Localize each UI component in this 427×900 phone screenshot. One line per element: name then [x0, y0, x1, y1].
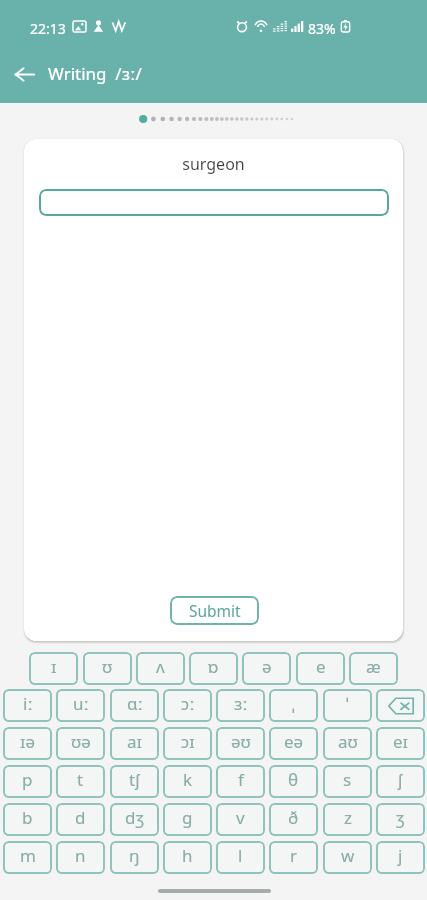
- staticText: w: [341, 844, 355, 867]
- button[interactable]: ə: [242, 652, 291, 685]
- staticText: Submit: [189, 600, 241, 621]
- staticText: ɪə: [20, 730, 36, 753]
- button[interactable]: eɪ: [376, 727, 425, 760]
- button[interactable]: eə: [269, 727, 318, 760]
- staticText: tʃ: [129, 768, 140, 791]
- button[interactable]: g: [163, 803, 212, 836]
- button[interactable]: m: [3, 841, 52, 874]
- button[interactable]: Backspace: [376, 689, 425, 722]
- staticText: θ: [288, 768, 299, 791]
- button[interactable]: e: [296, 652, 345, 685]
- button[interactable]: b: [3, 803, 52, 836]
- staticText: d: [75, 806, 86, 829]
- staticText: Writing /ɜː/: [48, 62, 142, 85]
- staticText: ɪ: [51, 655, 57, 678]
- button[interactable]: [39, 189, 389, 216]
- button[interactable]: ʒ: [376, 803, 425, 836]
- staticText: m: [20, 844, 36, 867]
- button[interactable]: ʌ: [136, 652, 185, 685]
- staticText: aɪ: [127, 730, 142, 753]
- staticText: e: [316, 655, 326, 678]
- button[interactable]: tʃ: [110, 765, 159, 798]
- staticText: æ: [366, 655, 381, 678]
- button[interactable]: ʊə: [56, 727, 105, 760]
- button[interactable]: Submit: [170, 596, 259, 625]
- staticText: k: [183, 768, 193, 791]
- button[interactable]: l: [216, 841, 265, 874]
- staticText: p: [22, 768, 33, 791]
- staticText: ə: [262, 655, 272, 678]
- button[interactable]: f: [216, 765, 265, 798]
- button[interactable]: n: [56, 841, 105, 874]
- button[interactable]: ɑː: [110, 689, 159, 722]
- button[interactable]: w: [323, 841, 372, 874]
- staticText: eɪ: [393, 730, 409, 753]
- staticText: l: [238, 844, 243, 867]
- button[interactable]: v: [216, 803, 265, 836]
- staticText: ɔɪ: [181, 730, 195, 753]
- button[interactable]: h: [163, 841, 212, 874]
- staticText: z: [344, 806, 352, 829]
- staticText: t: [77, 768, 84, 791]
- staticText: ʒ: [396, 806, 405, 829]
- staticText: uː: [73, 692, 89, 715]
- staticText: surgeon: [24, 153, 403, 175]
- button[interactable]: p: [3, 765, 52, 798]
- staticText: əʊ: [231, 730, 251, 753]
- staticText: n: [75, 844, 86, 867]
- staticText: f: [238, 768, 244, 791]
- button[interactable]: aʊ: [323, 727, 372, 760]
- button[interactable]: ɪə: [3, 727, 52, 760]
- button[interactable]: j: [376, 841, 425, 874]
- button[interactable]: uː: [56, 689, 105, 722]
- staticText: eə: [284, 730, 304, 753]
- staticText: j: [398, 844, 403, 867]
- button[interactable]: ɔː: [163, 689, 212, 722]
- button[interactable]: əʊ: [216, 727, 265, 760]
- staticText: ɜː: [234, 692, 248, 715]
- staticText: 83%: [308, 19, 336, 38]
- button[interactable]: iː: [3, 689, 52, 722]
- button[interactable]: k: [163, 765, 212, 798]
- staticText: ʊ: [102, 655, 113, 678]
- staticText: g: [182, 806, 193, 829]
- staticText: r: [290, 844, 298, 867]
- staticText: ɔː: [181, 692, 195, 715]
- staticText: ɑː: [127, 692, 143, 715]
- staticText: ʃ: [398, 768, 403, 791]
- button[interactable]: ˌ: [269, 689, 318, 722]
- button[interactable]: æ: [349, 652, 398, 685]
- staticText: iː: [23, 692, 33, 715]
- button[interactable]: ʃ: [376, 765, 425, 798]
- button[interactable]: Back: [0, 50, 48, 98]
- button[interactable]: dʒ: [110, 803, 159, 836]
- staticText: 22:13: [30, 19, 66, 38]
- staticText: v: [236, 806, 245, 829]
- staticText: ð: [288, 806, 299, 829]
- staticText: aʊ: [338, 730, 358, 753]
- staticText: b: [22, 806, 33, 829]
- button[interactable]: ŋ: [110, 841, 159, 874]
- button[interactable]: ɒ: [189, 652, 238, 685]
- button[interactable]: s: [323, 765, 372, 798]
- button[interactable]: ʊ: [83, 652, 132, 685]
- staticText: s: [343, 768, 352, 791]
- button[interactable]: r: [269, 841, 318, 874]
- staticText: ŋ: [129, 844, 140, 867]
- button[interactable]: ˈ: [323, 689, 372, 722]
- staticText: ʊə: [71, 730, 91, 753]
- button[interactable]: d: [56, 803, 105, 836]
- staticText: ˌ: [292, 692, 295, 715]
- button[interactable]: aɪ: [110, 727, 159, 760]
- staticText: ʌ: [156, 655, 165, 678]
- button[interactable]: ɜː: [216, 689, 265, 722]
- staticText: ˈ: [346, 692, 349, 715]
- button[interactable]: ð: [269, 803, 318, 836]
- button[interactable]: ɪ: [29, 652, 78, 685]
- button[interactable]: t: [56, 765, 105, 798]
- staticText: ɒ: [208, 655, 219, 678]
- other: Backspace: [388, 697, 414, 715]
- button[interactable]: ɔɪ: [163, 727, 212, 760]
- button[interactable]: θ: [269, 765, 318, 798]
- button[interactable]: z: [323, 803, 372, 836]
